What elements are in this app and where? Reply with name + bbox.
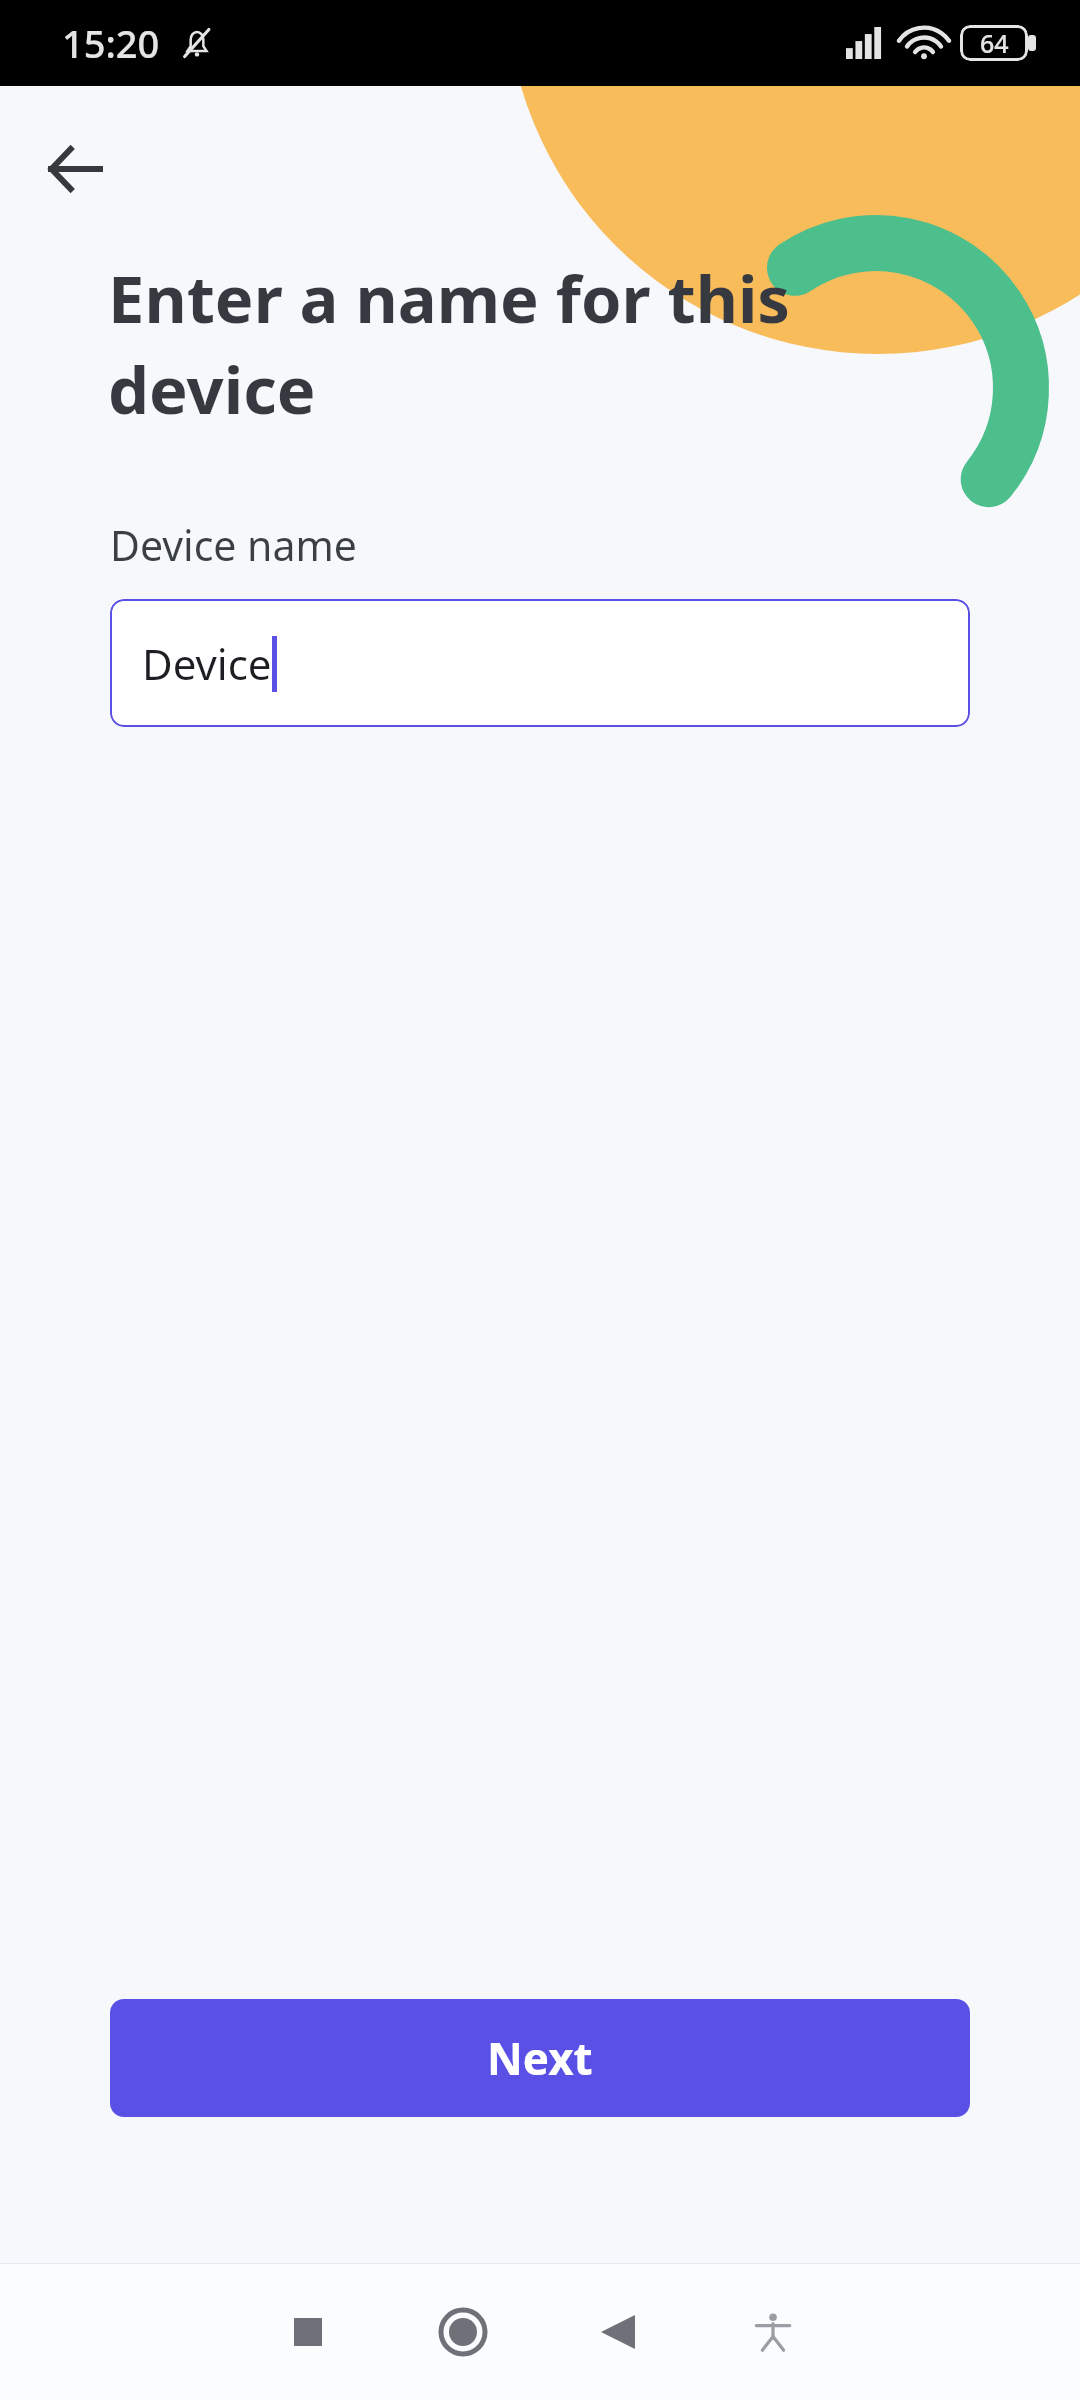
staticText: Device name [110,517,357,573]
button[interactable]: Home [385,2263,540,2400]
staticText: 15:20 [62,17,160,69]
button[interactable]: Back [540,2263,695,2400]
staticText: Device [142,635,272,692]
staticText: Next [487,2028,593,2088]
button[interactable]: Recent apps [230,2263,385,2400]
staticText: 64 [980,26,1009,60]
button[interactable]: Device [110,599,970,727]
button[interactable]: Next [110,1999,970,2117]
button[interactable]: Back [22,116,128,222]
staticText: Enter a name for this device [108,254,830,433]
button[interactable]: Accessibility [695,2263,850,2400]
